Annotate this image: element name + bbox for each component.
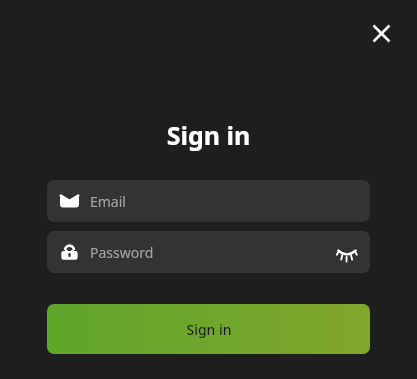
button[interactable]: Email field — [47, 180, 370, 222]
button[interactable]: Password field — [47, 231, 370, 273]
button[interactable]: Sign in — [47, 304, 370, 354]
staticText: Email — [90, 192, 126, 211]
button[interactable]: Show password — [335, 240, 359, 264]
staticText: Password — [90, 243, 154, 262]
staticText: Sign in — [186, 320, 232, 339]
staticText: Sign in — [0, 118, 417, 152]
button[interactable]: Close — [363, 15, 399, 51]
